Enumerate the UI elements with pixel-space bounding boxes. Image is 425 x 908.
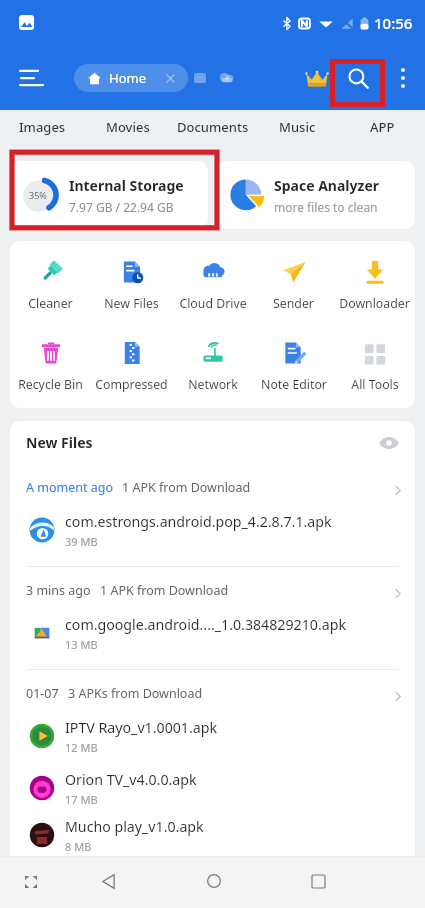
button[interactable]: Space Analyzer xyxy=(217,161,415,229)
staticText: Note Editor xyxy=(261,376,327,393)
staticText: Recycle Bin xyxy=(18,376,83,393)
button[interactable]: Network xyxy=(172,341,253,393)
staticText: 3 mins ago xyxy=(26,582,91,599)
staticText: 3 APKs from Download xyxy=(68,685,203,702)
staticText: Documents xyxy=(177,118,249,136)
staticText: New Files xyxy=(26,433,93,452)
staticText: 39 MB xyxy=(65,534,98,549)
button[interactable]: Images xyxy=(0,110,85,143)
staticText: 17 MB xyxy=(65,792,98,807)
button[interactable]: Sender xyxy=(253,260,334,312)
button[interactable]: 01-07 xyxy=(10,670,415,710)
button[interactable]: Mucho play_v1.0.apk xyxy=(10,814,415,856)
staticText: Mucho play_v1.0.apk xyxy=(65,817,204,836)
button[interactable]: Back xyxy=(85,857,133,905)
staticText: APP xyxy=(370,118,395,136)
staticText: Space Analyzer xyxy=(274,176,380,195)
staticText: Cloud Drive xyxy=(179,295,247,312)
staticText: IPTV Rayo_v1.0001.apk xyxy=(65,718,218,737)
button[interactable]: New Files xyxy=(91,260,172,312)
button[interactable]: Movies xyxy=(85,110,170,143)
staticText: Compressed xyxy=(95,376,168,393)
staticText: 12 MB xyxy=(65,740,98,755)
staticText: Home xyxy=(109,69,146,87)
staticText: Network xyxy=(188,376,238,393)
staticText: Music xyxy=(279,118,316,136)
button[interactable]: 35% xyxy=(10,161,208,229)
button[interactable]: IPTV Rayo_v1.0001.apk xyxy=(10,710,415,762)
staticText: Orion TV_v4.0.0.apk xyxy=(65,770,197,789)
staticText: 01-07 xyxy=(26,685,59,702)
button[interactable]: Orion TV_v4.0.0.apk xyxy=(10,762,415,814)
staticText: com.google.android...._1.0.384829210.apk xyxy=(65,615,346,634)
staticText: Sender xyxy=(273,295,314,312)
button[interactable]: Toggle visibility xyxy=(375,429,403,457)
staticText: com.estrongs.android.pop_4.2.8.7.1.apk xyxy=(65,512,332,531)
button[interactable]: Recent apps xyxy=(294,857,342,905)
button[interactable]: Home xyxy=(74,64,188,92)
staticText: 8 MB xyxy=(65,839,92,854)
staticText: 10:56 xyxy=(374,13,413,33)
button[interactable]: APP xyxy=(340,110,425,143)
staticText: Movies xyxy=(106,118,150,136)
staticText: Cleaner xyxy=(28,295,73,312)
staticText: 1 APK from Download xyxy=(122,479,251,496)
button[interactable]: com.estrongs.android.pop_4.2.8.7.1.apk xyxy=(10,504,415,556)
button[interactable]: Recycle Bin xyxy=(10,341,91,393)
staticText: 35% xyxy=(29,189,47,201)
button[interactable]: Note Editor xyxy=(253,341,334,393)
button[interactable]: Music xyxy=(255,110,340,143)
staticText: All Tools xyxy=(351,376,399,393)
button[interactable]: More options xyxy=(383,58,423,98)
button[interactable]: Home xyxy=(190,857,238,905)
staticText: Downloader xyxy=(339,295,410,312)
button[interactable]: Compressed xyxy=(91,341,172,393)
button[interactable]: Documents xyxy=(170,110,255,143)
button[interactable]: Downloader xyxy=(334,260,415,312)
button[interactable]: Premium xyxy=(297,58,337,98)
button[interactable]: Cleaner xyxy=(10,260,91,312)
staticText: 13 MB xyxy=(65,637,98,652)
button[interactable]: Menu xyxy=(7,54,55,102)
button[interactable]: Hide navigation bar xyxy=(10,861,51,902)
button[interactable]: com.google.android...._1.0.384829210.apk xyxy=(10,607,415,659)
staticText: Internal Storage xyxy=(69,176,184,195)
staticText: 1 APK from Download xyxy=(100,582,229,599)
staticText: A moment ago xyxy=(26,479,113,496)
button[interactable]: 3 mins ago xyxy=(10,567,415,607)
staticText: more files to clean xyxy=(274,199,378,215)
staticText: New Files xyxy=(104,295,159,312)
button[interactable]: Search xyxy=(335,55,381,101)
button[interactable]: A moment ago xyxy=(10,464,415,504)
staticText: 7.97 GB / 22.94 GB xyxy=(69,199,174,215)
button[interactable]: All Tools xyxy=(334,341,415,393)
button[interactable]: Cloud Drive xyxy=(172,260,253,312)
staticText: Images xyxy=(19,118,66,136)
